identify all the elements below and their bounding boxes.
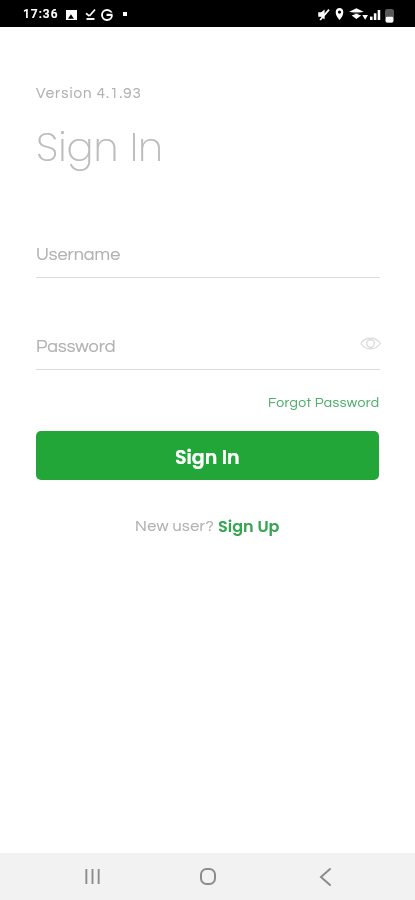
button[interactable]: Home	[178, 853, 238, 900]
staticText: Forgot Password	[268, 396, 380, 410]
button[interactable]: Forgot Password	[0, 396, 380, 410]
staticText: New user?	[135, 518, 218, 534]
staticText: Username	[36, 245, 121, 264]
button[interactable]: Show password	[357, 330, 383, 356]
staticText: Sign In	[36, 119, 163, 175]
staticText: Sign In	[175, 444, 240, 471]
staticText: Password	[36, 337, 116, 356]
button[interactable]: Sign Up	[218, 515, 280, 537]
staticText: Version 4.1.93	[36, 86, 142, 101]
staticText: Sign Up	[218, 515, 280, 537]
button[interactable]: Back	[295, 853, 355, 900]
button[interactable]: Sign In	[36, 431, 379, 480]
staticText: 17:36	[23, 7, 59, 21]
button[interactable]: Recents	[62, 853, 122, 900]
